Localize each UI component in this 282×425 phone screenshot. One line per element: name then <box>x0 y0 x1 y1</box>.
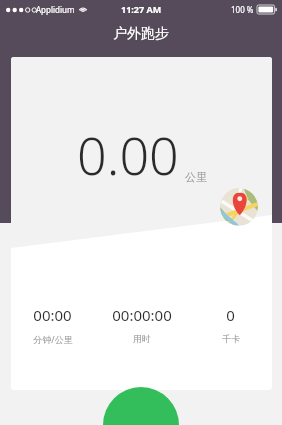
staticText: 00:00:00 <box>112 305 172 325</box>
staticText: 用时 <box>133 333 151 344</box>
staticText: 千卡 <box>222 333 240 344</box>
staticText: 0 <box>226 305 235 325</box>
staticText: 11:27 AM <box>121 3 162 15</box>
button[interactable]: 00:00:00 <box>94 305 189 344</box>
staticText: 户外跑步 <box>0 25 282 43</box>
button[interactable]: 0.00 <box>11 57 272 390</box>
staticText: 分钟/公里 <box>33 333 73 345</box>
button[interactable]: Map <box>220 188 258 226</box>
staticText: Applidium <box>36 4 75 15</box>
button[interactable]: Start run <box>103 387 179 425</box>
staticText: 公里 <box>185 170 207 184</box>
staticText: 00:00 <box>33 305 72 325</box>
button[interactable]: 0 <box>189 305 272 344</box>
button[interactable]: 00:00 <box>11 305 94 345</box>
staticText: 100 % <box>231 4 254 15</box>
staticText: 0.00 <box>77 119 179 190</box>
